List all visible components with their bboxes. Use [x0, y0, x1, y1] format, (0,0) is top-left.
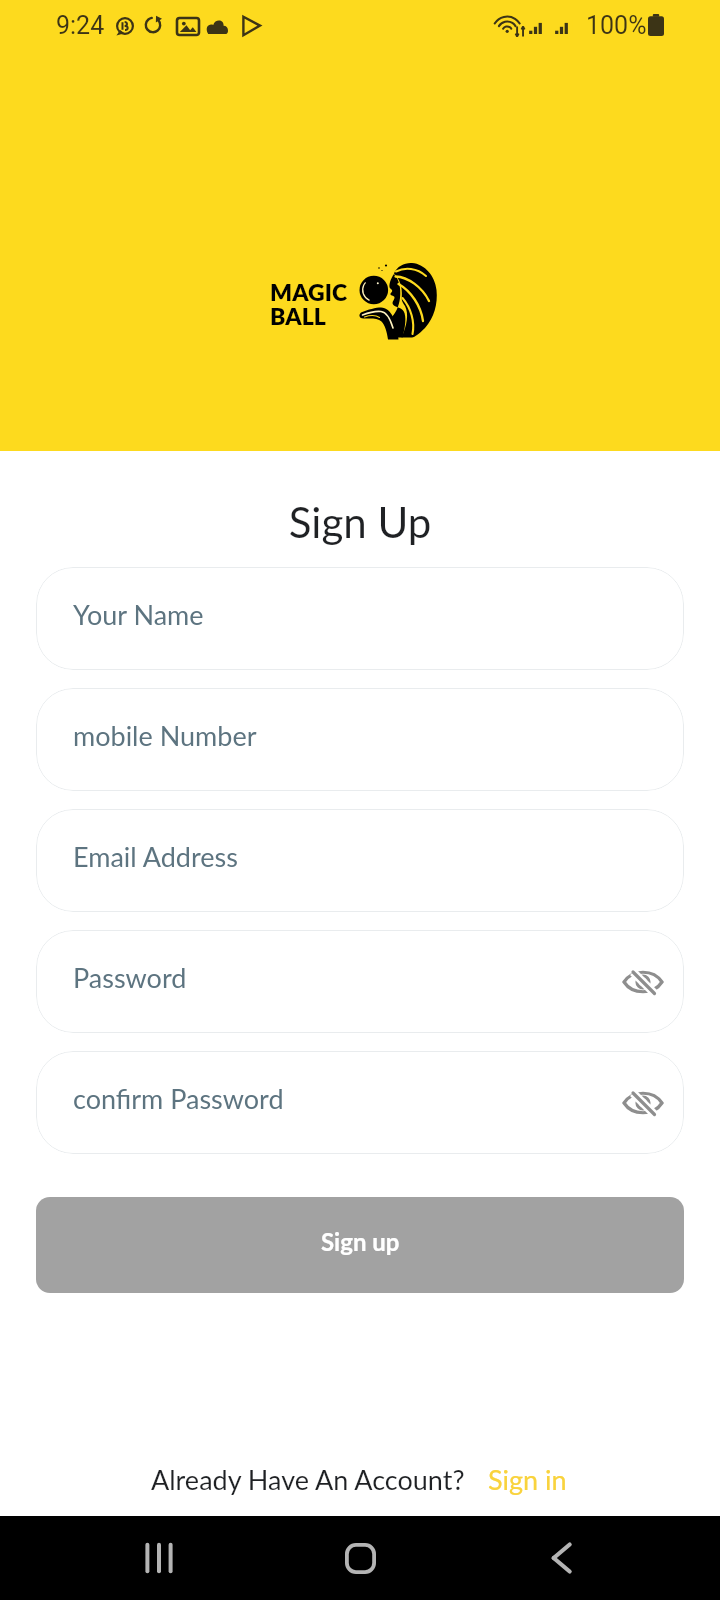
button[interactable]: Show password	[613, 952, 673, 1012]
button[interactable]: Back	[526, 1516, 596, 1600]
staticText: Already Have An Account?	[151, 1463, 465, 1495]
staticText: 100%	[586, 11, 647, 40]
button[interactable]: Sign in	[486, 1463, 569, 1495]
staticText: Your Name	[73, 598, 204, 630]
staticText: Email Address	[73, 840, 238, 872]
button[interactable]: Recents	[124, 1516, 194, 1600]
button[interactable]: Email Address	[36, 809, 684, 912]
staticText: Password	[73, 961, 187, 993]
staticText: Sign up	[321, 1227, 400, 1256]
staticText: mobile Number	[73, 719, 257, 751]
staticText: Sign Up	[0, 497, 720, 547]
staticText: BALL	[270, 302, 327, 330]
button[interactable]: Your Name	[36, 567, 684, 670]
button[interactable]: confirm Password	[36, 1051, 684, 1154]
button[interactable]: Sign up	[36, 1197, 684, 1293]
staticText: confirm Password	[73, 1082, 284, 1114]
staticText: MAGIC	[270, 278, 348, 306]
button[interactable]: Home	[325, 1523, 395, 1593]
button[interactable]: Show password	[613, 1073, 673, 1133]
staticText: 9:24	[56, 11, 105, 40]
button[interactable]: Password	[36, 930, 684, 1033]
staticText: Sign in	[488, 1463, 567, 1495]
button[interactable]: mobile Number	[36, 688, 684, 791]
